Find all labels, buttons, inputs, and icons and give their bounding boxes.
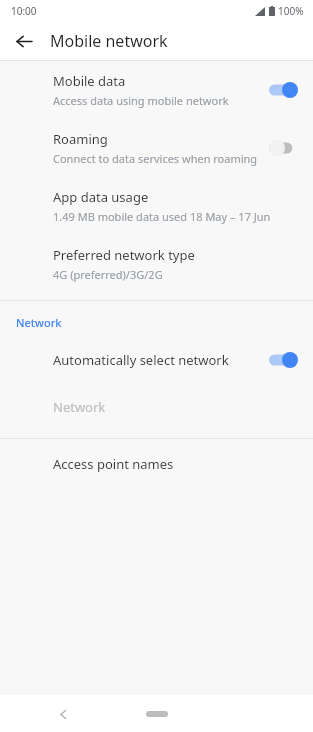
button[interactable]: Mobile data: [0, 61, 313, 119]
staticText: Connect to data services when roaming: [53, 151, 258, 166]
staticText: Automatically select network: [53, 351, 229, 369]
button[interactable]: Toggle on: [269, 80, 299, 100]
button[interactable]: Automatically select network: [0, 336, 313, 384]
button[interactable]: Home: [137, 703, 177, 725]
button[interactable]: Network: [0, 384, 313, 430]
staticText: Network: [53, 398, 106, 416]
staticText: 1.49 MB mobile data used 18 May – 17 Jun: [53, 209, 271, 224]
staticText: 10:00: [11, 4, 37, 18]
button[interactable]: Toggle off: [269, 138, 299, 158]
staticText: Mobile network: [50, 30, 168, 52]
button[interactable]: Roaming: [0, 119, 313, 177]
button[interactable]: Back: [6, 23, 42, 59]
button[interactable]: Access point names: [0, 439, 313, 489]
staticText: Access data using mobile network: [53, 93, 229, 108]
staticText: Mobile data: [53, 72, 126, 90]
staticText: App data usage: [53, 188, 149, 206]
button[interactable]: Toggle on: [269, 350, 299, 370]
staticText: Roaming: [53, 130, 108, 148]
staticText: Access point names: [53, 455, 174, 473]
staticText: Network: [16, 315, 62, 330]
staticText: 100%: [278, 4, 304, 18]
staticText: 4G (preferred)/3G/2G: [53, 267, 163, 282]
staticText: Preferred network type: [53, 246, 195, 264]
button[interactable]: App data usage: [0, 177, 313, 235]
button[interactable]: Back: [48, 699, 78, 729]
button[interactable]: Preferred network type: [0, 235, 313, 293]
